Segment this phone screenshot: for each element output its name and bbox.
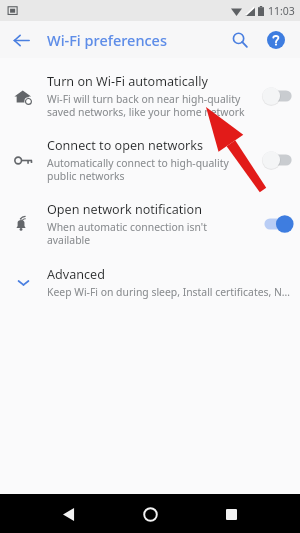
staticText: Wi-Fi preferences [47,30,167,50]
staticText: Advanced [47,266,105,283]
staticText: When automatic connection isn't availabl… [47,220,207,247]
button[interactable]: Off [254,140,300,180]
button[interactable]: On [254,204,300,244]
button[interactable]: Help [263,27,289,53]
staticText: Wi-Fi will turn back on near high-qualit… [47,92,245,119]
staticText: Automatically connect to high-quality pu… [47,156,229,183]
staticText: 11:03 [268,4,295,18]
button[interactable]: Advanced [0,256,300,308]
button[interactable]: Connect to open networks [0,128,300,192]
button[interactable]: Open network notification [0,192,300,256]
button[interactable]: Back [54,499,84,529]
button[interactable]: Recent apps [216,499,246,529]
staticText: Keep Wi-Fi on during sleep, Install cert… [47,285,292,299]
button[interactable]: Home [135,499,165,529]
staticText: Open network notification [47,201,202,218]
staticText: Turn on Wi-Fi automatically [47,73,208,90]
button[interactable]: Turn on Wi-Fi automatically [0,64,300,128]
button[interactable]: Navigate up [9,28,33,52]
staticText: Connect to open networks [47,137,203,154]
button[interactable]: Search [227,27,253,53]
button[interactable]: Off [254,76,300,116]
